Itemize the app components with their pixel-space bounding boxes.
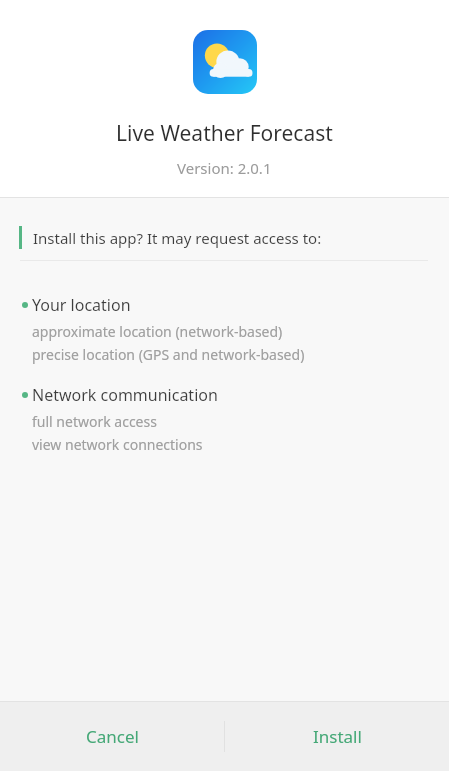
staticText: Version: 2.0.1 [177, 158, 272, 178]
staticText: view network connections [32, 435, 203, 454]
staticText: full network access [32, 412, 157, 431]
staticText: Cancel [86, 725, 139, 748]
button[interactable]: Install [225, 702, 449, 771]
staticText: Live Weather Forecast [116, 119, 333, 148]
staticText: Install this app? It may request access … [33, 228, 322, 248]
staticText: precise location (GPS and network-based) [32, 345, 305, 364]
staticText: Install [313, 725, 362, 748]
staticText: approximate location (network-based) [32, 322, 283, 341]
other: Live Weather Forecast app icon [193, 30, 257, 94]
staticText: Your location [32, 294, 131, 316]
button[interactable]: Cancel [0, 702, 224, 771]
staticText: Network communication [32, 384, 218, 406]
